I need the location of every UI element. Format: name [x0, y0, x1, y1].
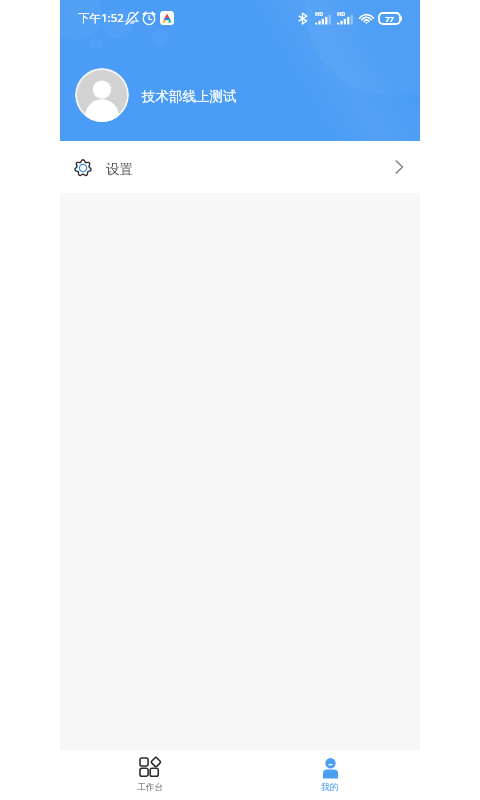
staticText: 77 — [385, 14, 394, 24]
other: 我的 — [320, 758, 341, 779]
staticText: 下午1:52 — [78, 10, 124, 26]
button[interactable]: 我的 — [240, 750, 420, 800]
staticText: 设置 — [106, 161, 133, 178]
button[interactable]: 工作台 — [60, 750, 240, 800]
staticText: HD — [315, 10, 324, 17]
staticText: 我的 — [321, 782, 339, 793]
staticText: HD — [337, 10, 346, 17]
other: 工作台 — [140, 758, 161, 779]
staticText: 工作台 — [137, 782, 164, 793]
button[interactable]: 设置 — [60, 141, 420, 193]
staticText: 技术部线上测试 — [142, 88, 237, 105]
button[interactable]: 技术部线上测试 — [60, 68, 420, 122]
